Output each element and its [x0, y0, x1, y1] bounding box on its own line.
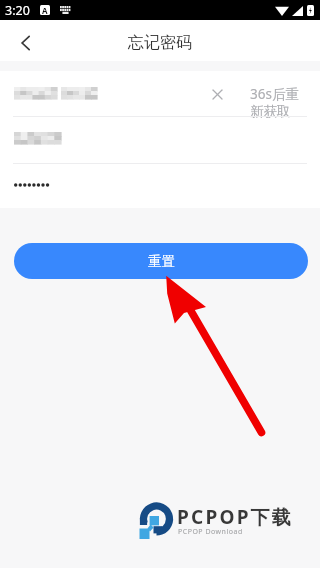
staticText: 重置 — [148, 253, 175, 270]
staticText: 36s后重 — [250, 85, 299, 103]
button[interactable]: Clear — [207, 84, 227, 104]
button[interactable]: 重置 — [14, 243, 308, 279]
staticText: 新获取 — [250, 103, 291, 120]
button[interactable]: 36s后重 — [250, 85, 299, 120]
staticText: 忘记密码 — [128, 33, 192, 53]
staticText: PCPOP Download — [178, 527, 243, 537]
staticText: PCPOP下载 — [177, 504, 294, 530]
staticText: 3:20 — [5, 2, 30, 19]
button[interactable]: Back — [11, 28, 41, 58]
staticText: A — [42, 5, 48, 15]
